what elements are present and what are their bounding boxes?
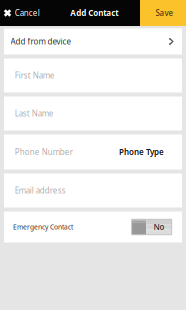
staticText: Add from device — [11, 36, 72, 47]
staticText: First Name — [15, 70, 55, 81]
staticText: Phone Number — [15, 147, 73, 157]
button[interactable]: Email address — [4, 173, 182, 207]
button[interactable]: First Name — [4, 58, 182, 92]
button[interactable]: Emergency Contact toggle — [132, 219, 172, 235]
button[interactable]: Cancel — [0, 0, 44, 26]
staticText: Emergency Contact — [13, 223, 73, 231]
button[interactable]: Save — [140, 0, 186, 26]
staticText: Phone Type — [119, 147, 164, 157]
staticText: Last Name — [15, 108, 54, 119]
staticText: No — [153, 222, 164, 232]
staticText: Cancel — [15, 8, 40, 18]
button[interactable]: Phone Number — [4, 134, 182, 169]
staticText: Save — [155, 8, 173, 18]
staticText: Email address — [15, 185, 66, 196]
staticText: Add Contact — [70, 8, 118, 18]
button[interactable]: Add from device — [4, 28, 182, 54]
button[interactable]: Last Name — [4, 96, 182, 130]
